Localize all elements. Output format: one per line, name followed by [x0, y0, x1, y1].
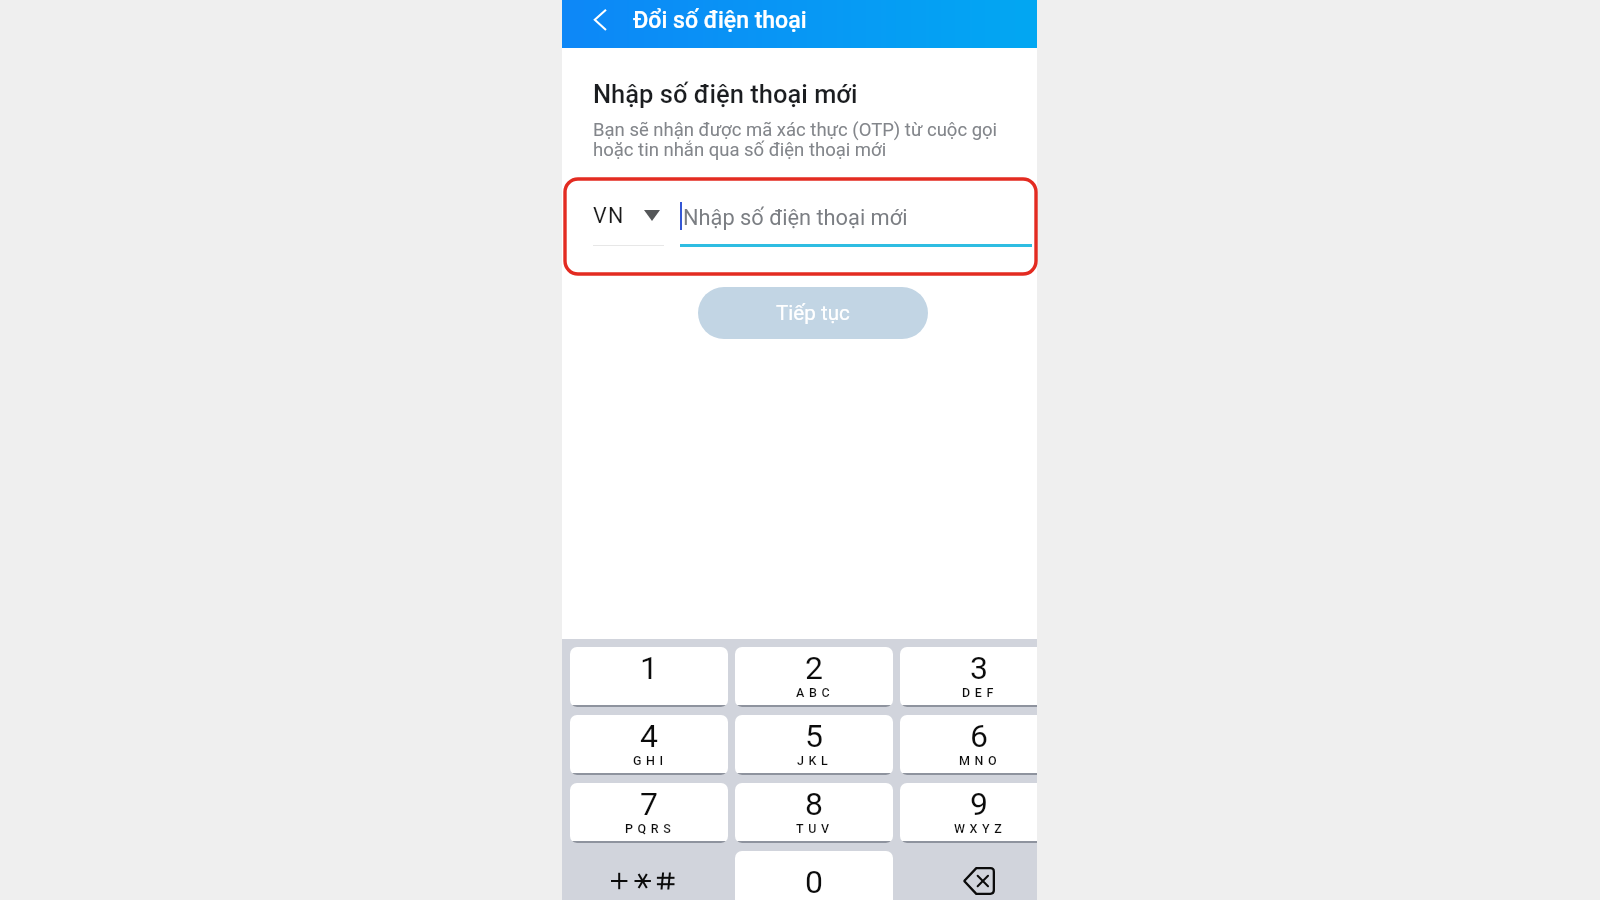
staticText: 6 — [970, 717, 988, 755]
staticText: Đổi số điện thoại — [633, 7, 807, 34]
staticText: 5 — [805, 717, 823, 755]
button[interactable]: 8 — [735, 783, 893, 843]
button[interactable]: 6 — [900, 715, 1037, 775]
button[interactable]: 3 — [900, 647, 1037, 707]
staticText: 1 — [640, 649, 658, 687]
staticText: Bạn sẽ nhận được mã xác thực (OTP) từ cu… — [593, 119, 998, 160]
button[interactable]: 7 — [570, 783, 728, 843]
staticText: TUV — [796, 821, 834, 836]
staticText: 2 — [805, 649, 823, 687]
staticText: 3 — [970, 649, 988, 687]
staticText: GHI — [633, 753, 668, 768]
button[interactable]: 1 — [570, 647, 728, 707]
staticText: PQRS — [625, 821, 676, 836]
button[interactable]: 2 — [735, 647, 893, 707]
staticText: Nhập số điện thoại mới — [683, 205, 908, 231]
button[interactable]: 4 — [570, 715, 728, 775]
staticText: JKL — [797, 753, 833, 768]
staticText: ABC — [796, 685, 835, 700]
staticText: DEF — [962, 685, 998, 700]
button[interactable]: Symbols — [570, 851, 728, 900]
staticText: Tiếp tục — [776, 301, 850, 325]
button[interactable]: 0 — [735, 851, 893, 900]
button[interactable]: 5 — [735, 715, 893, 775]
button[interactable]: 9 — [900, 783, 1037, 843]
staticText: Nhập số điện thoại mới — [593, 79, 858, 109]
staticText: 0 — [805, 863, 823, 900]
staticText: 4 — [640, 717, 658, 755]
staticText: 9 — [970, 785, 988, 823]
staticText: WXYZ — [954, 821, 1007, 836]
button[interactable]: Back — [582, 4, 622, 44]
staticText: 8 — [805, 785, 823, 823]
button[interactable]: Tiếp tục — [698, 287, 928, 339]
staticText: 7 — [640, 785, 658, 823]
button[interactable]: Backspace — [900, 851, 1037, 900]
staticText: VN — [593, 203, 625, 228]
staticText: MNO — [959, 753, 1002, 768]
